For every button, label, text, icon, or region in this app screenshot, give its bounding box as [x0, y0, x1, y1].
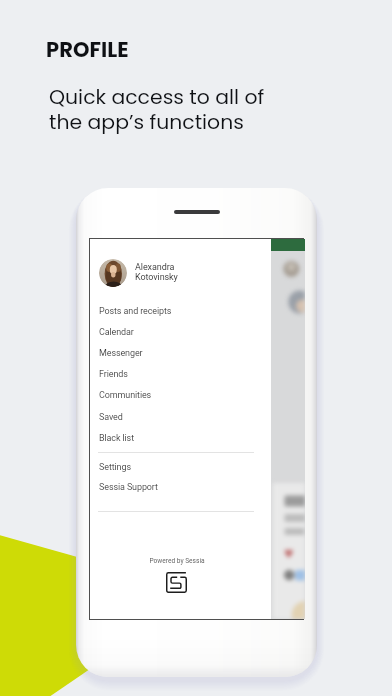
staticText: Communities — [99, 390, 152, 401]
staticText: Calendar — [99, 327, 134, 338]
button[interactable]: Communities — [90, 385, 271, 406]
staticText: Posts and receipts — [99, 306, 172, 317]
staticText: Friends — [99, 369, 128, 380]
button[interactable]: Black list — [90, 428, 271, 449]
button[interactable]: Settings — [90, 457, 271, 478]
staticText: Settings — [99, 462, 131, 473]
staticText: Saved — [99, 412, 123, 423]
button[interactable]: Friends — [90, 364, 271, 385]
button[interactable]: Messenger — [90, 343, 271, 364]
button[interactable]: Calendar — [90, 322, 271, 343]
staticText: Sessia Support — [99, 482, 158, 493]
button[interactable]: Posts and receipts — [90, 301, 271, 322]
staticText: Alexandra Kotovinsky — [135, 262, 178, 282]
staticText: PROFILE — [46, 35, 129, 64]
staticText: Quick access to all of the app’s functio… — [49, 83, 265, 136]
staticText: Black list — [99, 433, 134, 444]
staticText: Messenger — [99, 348, 143, 359]
staticText: Powered by Sessia — [149, 557, 205, 565]
button[interactable]: Sessia Support — [90, 477, 271, 498]
button[interactable]: Saved — [90, 407, 271, 428]
